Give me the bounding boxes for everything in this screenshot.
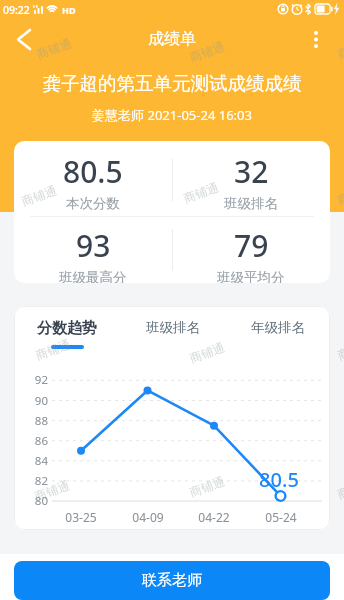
staticText: 商铺通 [32, 477, 71, 504]
staticText: 联系老师 [142, 571, 202, 590]
staticText: 班级最高分 [59, 269, 127, 283]
staticText: 商铺通 [187, 339, 226, 366]
staticText: 商铺通 [33, 336, 72, 363]
staticText: 班级排名 [224, 195, 278, 212]
staticText: 本次分数 [66, 195, 120, 212]
staticText: 分数趋势 [37, 319, 97, 338]
staticText: 商铺通 [335, 35, 344, 62]
staticText: 84 [28, 453, 48, 469]
staticText: 80.5 [63, 151, 123, 192]
button[interactable] [304, 27, 328, 51]
staticText: 82 [28, 473, 48, 489]
staticText: 商铺通 [34, 35, 73, 62]
staticText: 商铺通 [335, 336, 344, 363]
staticText: 成绩单 [148, 29, 196, 49]
staticText: 商铺通 [19, 182, 58, 209]
staticText: HD [62, 4, 76, 16]
staticText: 商铺通 [335, 475, 344, 502]
staticText: 商铺通 [181, 179, 220, 206]
staticText: 80 [28, 493, 48, 509]
staticText: 商铺通 [187, 38, 226, 65]
button[interactable]: 79 [172, 225, 330, 283]
staticText: 班级排名 [146, 319, 200, 336]
staticText: 姜慧老师 2021-05-24 16:03 [0, 106, 344, 124]
staticText: 龚子超的第五单元测试成绩成绩 [0, 72, 344, 95]
staticText: 93 [76, 225, 111, 266]
button[interactable]: 93 [14, 225, 172, 283]
staticText: 86 [28, 433, 48, 449]
button[interactable] [8, 23, 40, 55]
staticText: 商铺通 [187, 473, 226, 500]
staticText: 03-25 [61, 509, 101, 525]
staticText: 80.5 [259, 466, 299, 493]
staticText: 88 [28, 413, 48, 429]
staticText: 79 [234, 225, 269, 266]
staticText: 班级平均分 [217, 269, 285, 283]
staticText: 04-22 [194, 509, 234, 525]
button[interactable]: 分数趋势 [14, 306, 120, 356]
button[interactable]: 32 [172, 146, 330, 216]
button[interactable]: 班级排名 [120, 306, 225, 356]
staticText: 92 [28, 372, 48, 388]
button[interactable]: 80.5 [14, 146, 172, 216]
staticText: 32 [234, 151, 269, 192]
staticText: 年级排名 [251, 319, 305, 336]
staticText: 05-24 [261, 509, 301, 525]
button[interactable]: 联系老师 [14, 561, 330, 600]
staticText: 04-09 [128, 509, 168, 525]
staticText: 商铺通 [335, 181, 344, 208]
button[interactable]: 年级排名 [225, 306, 330, 356]
staticText: 90 [28, 393, 48, 409]
staticText: 09:22 [3, 3, 30, 17]
